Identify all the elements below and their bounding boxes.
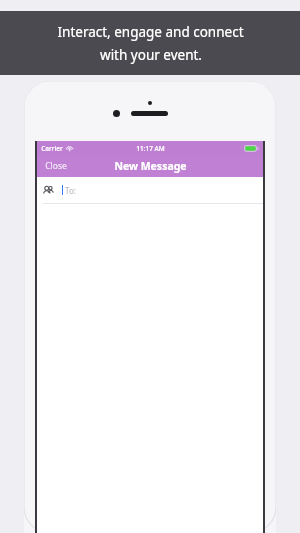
staticText: with your event. bbox=[100, 46, 202, 64]
staticText: Interact, engage and connect bbox=[57, 23, 244, 41]
staticText: Close bbox=[45, 160, 67, 172]
button[interactable]: Choose contacts bbox=[37, 177, 263, 203]
staticText: New Message bbox=[114, 159, 187, 173]
staticText: 11:17 AM bbox=[136, 144, 165, 153]
staticText: Carrier bbox=[41, 144, 63, 153]
button[interactable]: Close bbox=[37, 157, 75, 175]
staticText: To: bbox=[65, 185, 76, 196]
other: Choose contacts bbox=[43, 185, 54, 196]
